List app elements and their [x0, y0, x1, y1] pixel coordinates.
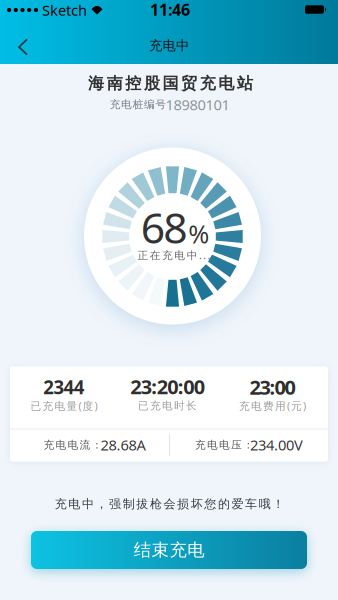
staticText: 已充电时长: [138, 399, 197, 412]
staticText: 18980101: [165, 95, 229, 114]
staticText: 充电中: [149, 37, 189, 54]
staticText: 正在充电中...: [137, 248, 211, 262]
staticText: 11:46: [150, 0, 190, 20]
staticText: 28.68A: [100, 435, 145, 454]
staticText: 充电费用(元): [239, 399, 306, 413]
staticText: 充电电压：: [195, 438, 254, 451]
staticText: 结束充电: [134, 539, 204, 561]
staticText: 2344: [43, 375, 85, 399]
staticText: 海南控股国贸充电站: [88, 74, 253, 93]
staticText: 充电电流：: [43, 438, 102, 451]
staticText: 23:00: [249, 374, 295, 400]
staticText: 已充电量(度): [30, 399, 97, 413]
staticText: 68: [141, 199, 187, 255]
staticText: 23:20:00: [130, 373, 205, 400]
staticText: 充电桩编号: [110, 98, 166, 111]
staticText: 234.00V: [250, 435, 303, 454]
staticText: Sketch: [42, 0, 87, 20]
button[interactable]: 结束充电: [31, 531, 307, 569]
staticText: %: [188, 217, 209, 250]
staticText: 充电中，强制拔枪会损坏您的爱车哦！: [55, 497, 284, 511]
button[interactable]: 返回: [6, 27, 40, 67]
